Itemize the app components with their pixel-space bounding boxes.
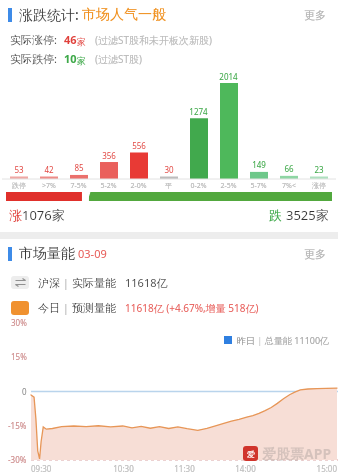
staticText: 实际跌停: (10, 51, 57, 66)
staticText: 149 (252, 159, 266, 170)
staticText: 53 (14, 164, 24, 175)
staticText: 市场量能 (19, 245, 75, 263)
staticText: 爱股票APP (262, 444, 332, 463)
button[interactable]: 更多 (300, 243, 330, 265)
staticText: 15% (11, 351, 27, 362)
staticText: 总量能 11100亿 (265, 334, 330, 346)
staticText: 爱 (247, 449, 255, 459)
staticText: 平 (165, 181, 172, 190)
staticText: 85 (74, 162, 84, 173)
staticText: 涨跌统计: (19, 5, 79, 24)
staticText: 涨停 (312, 181, 326, 190)
staticText: 23 (314, 164, 324, 175)
staticText: | (255, 334, 265, 346)
staticText: 今日 (38, 301, 60, 315)
staticText: 0 (22, 386, 27, 397)
staticText: -15% (8, 420, 27, 431)
staticText: 更多 (304, 8, 326, 22)
staticText: 跌停 (12, 181, 26, 190)
staticText: 市场人气一般 (82, 6, 166, 24)
staticText: 03-09 (78, 246, 107, 261)
staticText: 7-5% (70, 181, 87, 191)
staticText: 家 (77, 55, 86, 66)
staticText: 实际量能 (72, 276, 116, 290)
staticText: 11618亿 (+4.67%,增量 518亿) (125, 301, 259, 315)
staticText: 09:30 (31, 463, 93, 474)
staticText: 30 (164, 164, 174, 175)
staticText: 家 (77, 36, 86, 47)
staticText: 跌 (269, 207, 282, 223)
staticText: 更多 (304, 247, 326, 261)
staticText: 5-2% (100, 181, 117, 191)
staticText: 1274 (189, 106, 208, 117)
staticText: 3525家 (286, 206, 329, 224)
staticText: 实际涨停: (10, 32, 57, 47)
staticText: 昨日 (237, 335, 255, 346)
staticText: >7% (42, 181, 56, 191)
staticText: 10:30 (93, 463, 154, 474)
staticText: 556 (132, 140, 146, 151)
staticText: 1076家 (22, 206, 65, 224)
staticText: 5-7% (250, 181, 267, 191)
staticText: 涨 (9, 207, 22, 223)
staticText: 10 (64, 51, 77, 66)
staticText: 沪深 (38, 276, 60, 290)
staticText: 42 (44, 164, 54, 175)
staticText: 46 (64, 32, 77, 47)
staticText: 预测量能 (72, 301, 116, 315)
staticText: 0-2% (190, 181, 207, 191)
staticText: (过滤ST股) (95, 52, 143, 66)
staticText: 30% (11, 317, 27, 328)
staticText: | (60, 300, 72, 315)
staticText: 11:30 (154, 463, 215, 474)
staticText: 11618亿 (125, 275, 168, 290)
staticText: 15:00 (276, 463, 337, 474)
staticText: (过滤ST股和未开板次新股) (95, 33, 213, 47)
staticText: 2-5% (220, 181, 237, 191)
staticText: | (60, 275, 72, 290)
staticText: 14:00 (215, 463, 276, 474)
staticText: 66 (284, 163, 294, 174)
staticText: 2014 (219, 71, 238, 82)
staticText: 2-0% (130, 181, 147, 191)
staticText: 356 (102, 150, 116, 161)
button[interactable]: 更多 (300, 4, 330, 26)
staticText: -30% (8, 454, 27, 465)
staticText: 7%< (282, 181, 296, 191)
